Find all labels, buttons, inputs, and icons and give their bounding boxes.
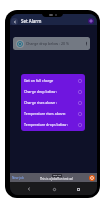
button[interactable]: Temperature rises above:	[21, 108, 85, 119]
staticText: Test Ad	[53, 174, 61, 177]
staticText: Get on full charge	[24, 78, 76, 83]
button[interactable]: Charge rises above :	[21, 97, 85, 108]
button[interactable]: Back	[23, 183, 35, 195]
staticText: Temperature drops below :	[24, 122, 76, 127]
button[interactable]: Add alarm	[88, 18, 94, 24]
staticText: Temperature rises above:	[24, 111, 76, 116]
button[interactable]: Get on full charge	[21, 75, 85, 86]
staticText: This is a JobsRun test ad	[40, 177, 73, 181]
button[interactable]: Back	[11, 18, 18, 25]
button[interactable]: Temperature drops below :	[21, 119, 85, 130]
staticText: Charge drop below : 20 %	[26, 41, 70, 46]
staticText: New job	[12, 176, 24, 180]
button[interactable]: More options	[84, 37, 89, 50]
button[interactable]: Advertiser	[89, 175, 95, 181]
staticText: Charge rises above :	[24, 100, 76, 105]
staticText: Set Alarm	[21, 18, 42, 24]
button[interactable]: Recent apps	[72, 183, 84, 195]
button[interactable]: Home	[48, 183, 60, 195]
staticText: Charge drop below :	[24, 89, 76, 94]
button[interactable]: Charge drop below : 20 %	[13, 37, 90, 50]
button[interactable]: Charge drop below :	[21, 86, 85, 97]
